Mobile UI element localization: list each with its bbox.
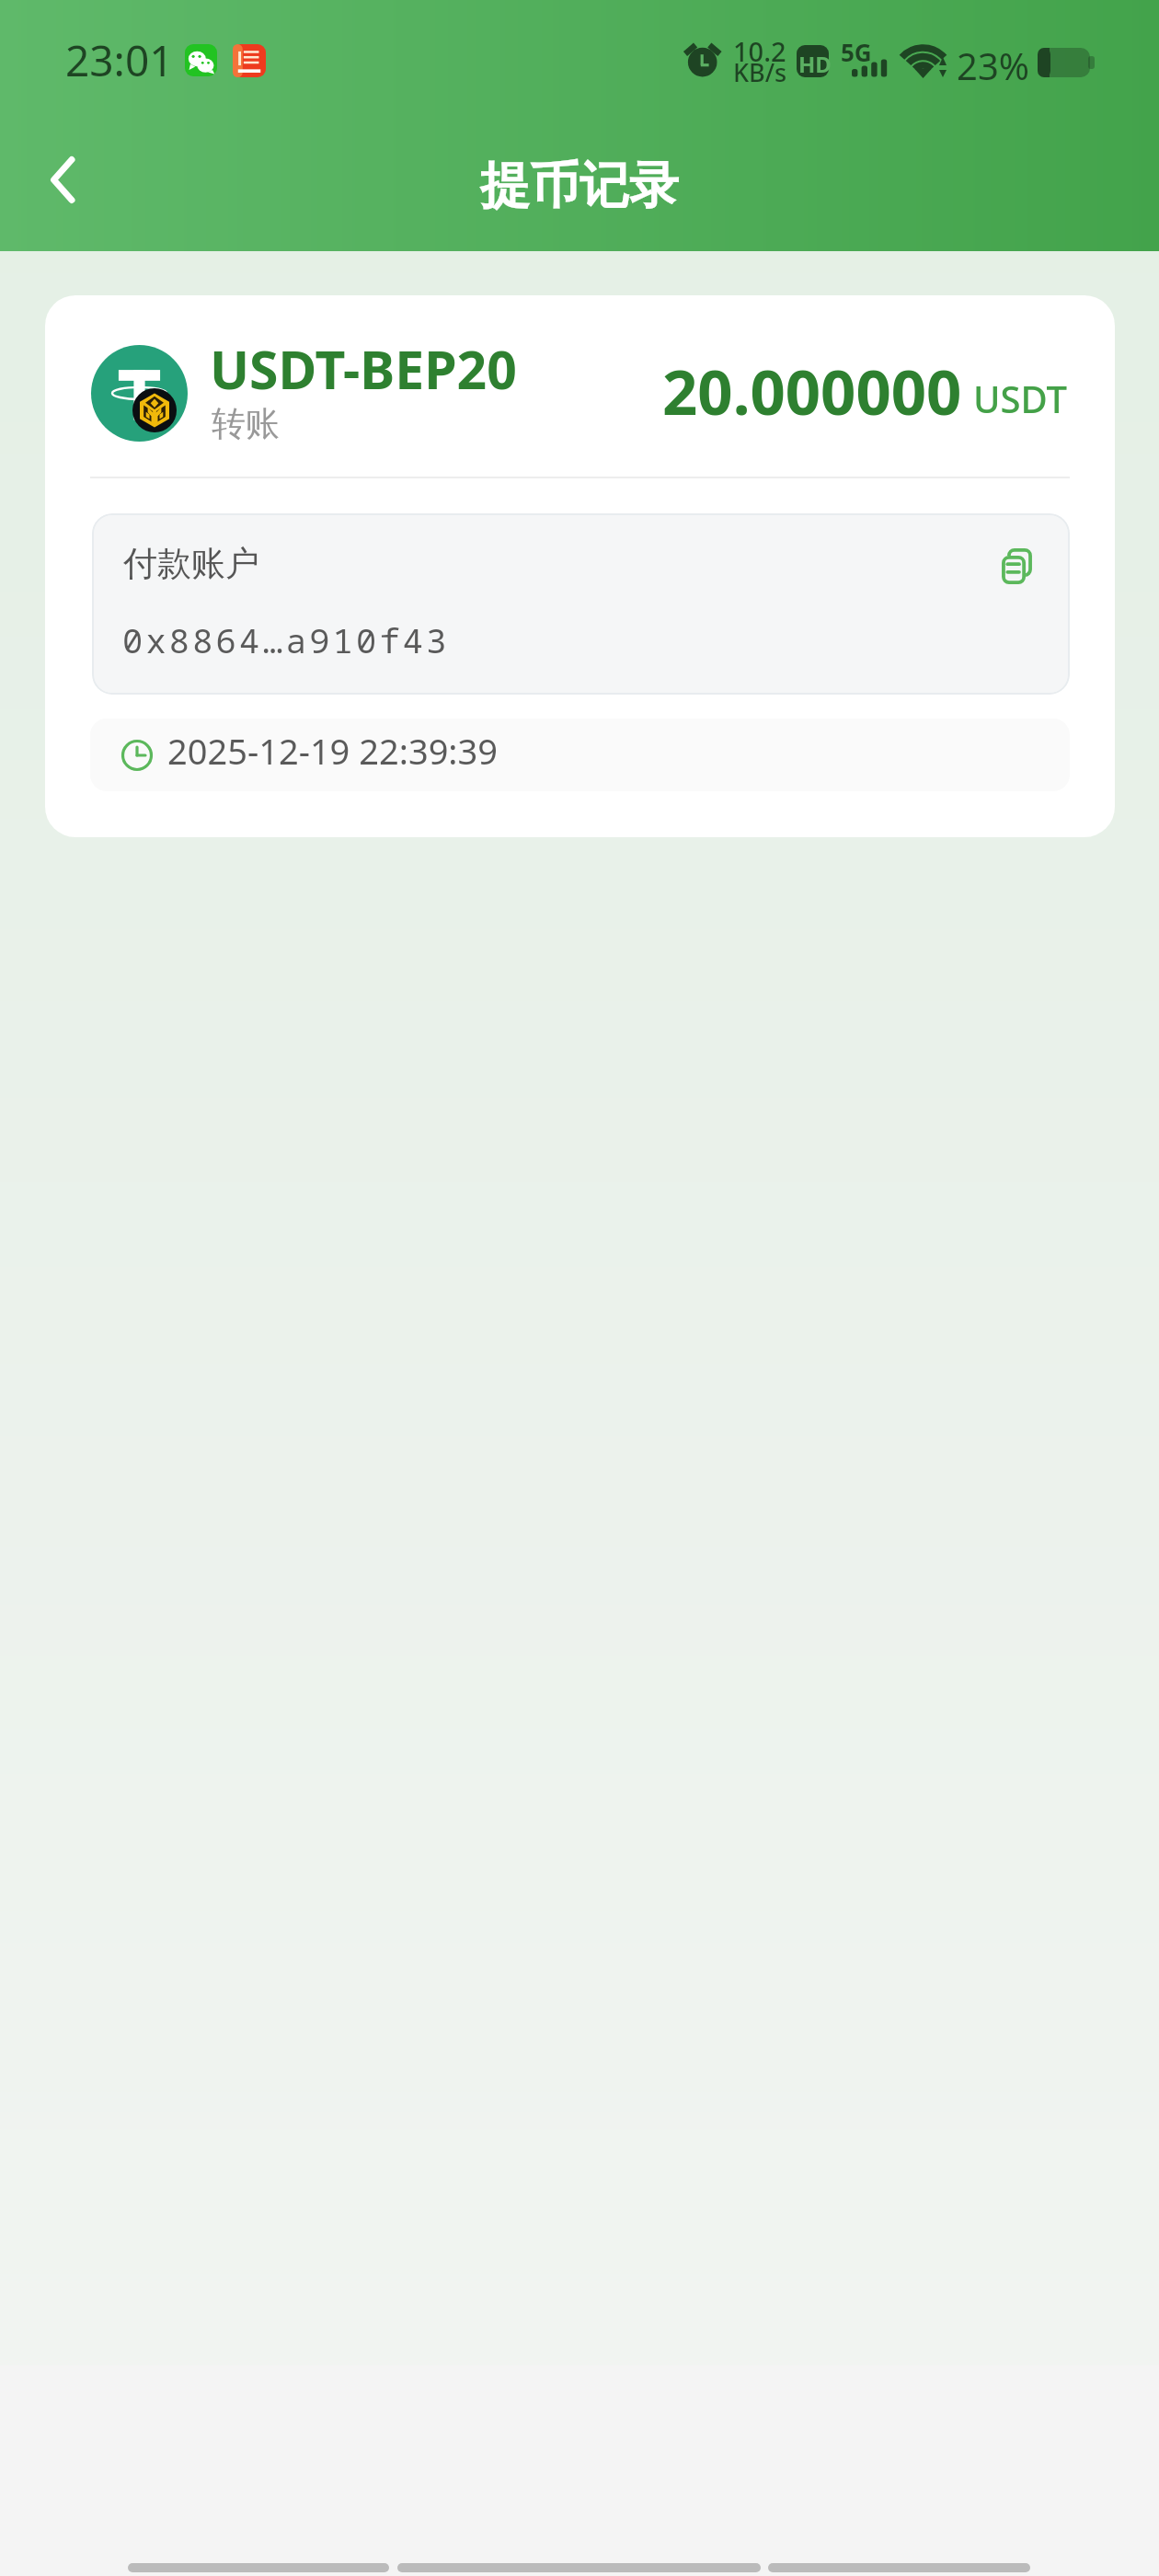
button[interactable]: Recents [768,2563,1030,2572]
button[interactable]: Back [128,2563,389,2572]
staticText: 5G [841,36,872,68]
staticText: USDT [973,374,1068,423]
button[interactable]: Copy address [982,531,1052,601]
button[interactable]: 2025-12-19 22:39:39 [90,719,1070,791]
button[interactable]: USDT-BEP20 [45,295,1115,837]
staticText: KB/s [733,55,787,89]
staticText: 转账 [212,402,280,445]
button[interactable]: Back [12,116,141,245]
button[interactable]: 付款账户 [92,513,1070,695]
staticText: USDT-BEP20 [210,333,517,405]
staticText: 2025-12-19 22:39:39 [167,727,499,775]
button[interactable]: Home [397,2563,761,2572]
staticText: 0x8864…a910f43 [122,616,450,662]
staticText: 20.000000 [662,349,962,432]
staticText: 23:01 [65,31,174,89]
staticText: HD [798,49,832,79]
staticText: 提币记录 [0,155,1159,217]
staticText: 23% [957,40,1029,90]
staticText: 付款账户 [123,542,259,585]
staticText: 10.2 [733,33,786,69]
